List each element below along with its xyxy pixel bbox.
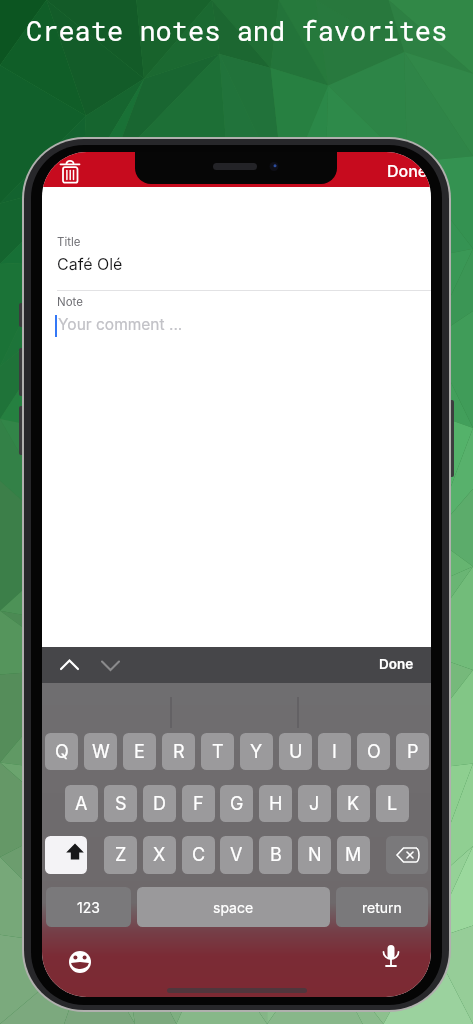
staticText: D (153, 793, 166, 815)
staticText: X (153, 844, 166, 866)
staticText: space (213, 899, 254, 916)
staticText: Y (250, 741, 263, 763)
button[interactable]: N (298, 836, 331, 874)
staticText: R (173, 741, 185, 763)
staticText: B (270, 844, 282, 866)
staticText: M (345, 844, 362, 866)
button[interactable]: G (220, 785, 253, 822)
staticText: O (367, 741, 381, 763)
staticText: W (92, 741, 110, 763)
button[interactable] (45, 836, 87, 874)
button[interactable]: S (104, 785, 137, 822)
button[interactable]: Done (387, 161, 428, 180)
staticText: J (309, 793, 320, 815)
button[interactable]: F (182, 785, 215, 822)
staticText: S (115, 793, 127, 815)
staticText: H (269, 793, 283, 815)
staticText: E (134, 741, 145, 763)
button[interactable]: Your comment ... (58, 315, 183, 334)
button[interactable]: C (182, 836, 215, 874)
button[interactable]: B (259, 836, 292, 874)
staticText: A (75, 793, 88, 815)
staticText: T (212, 741, 224, 763)
button[interactable]: V (220, 836, 253, 874)
button[interactable]: I (318, 733, 351, 770)
button[interactable]: M (337, 836, 370, 874)
staticText: V (230, 844, 243, 866)
button[interactable]: R (162, 733, 195, 770)
staticText: Title (57, 235, 81, 249)
button[interactable]: D (143, 785, 176, 822)
staticText: P (407, 741, 419, 763)
button[interactable]: return (336, 887, 428, 927)
button[interactable]: A (65, 785, 98, 822)
staticText: U (289, 741, 303, 763)
button[interactable]: K (337, 785, 370, 822)
button[interactable]: U (279, 733, 312, 770)
button[interactable]: Café Olé (57, 254, 123, 273)
button[interactable]: X (143, 836, 176, 874)
button[interactable]: Z (104, 836, 137, 874)
staticText: K (347, 793, 360, 815)
button[interactable]: J (298, 785, 331, 822)
staticText: C (192, 844, 206, 866)
button[interactable] (386, 836, 428, 874)
button[interactable]: Q (45, 733, 78, 770)
button[interactable]: H (259, 785, 292, 822)
staticText: G (230, 793, 244, 815)
button[interactable]: space (137, 887, 330, 927)
staticText: Create notes and favorites (26, 13, 448, 49)
staticText: Q (55, 741, 69, 763)
button[interactable]: E (123, 733, 156, 770)
staticText: I (332, 741, 337, 763)
button[interactable]: P (396, 733, 429, 770)
button[interactable]: Done (379, 656, 414, 672)
staticText: N (308, 844, 322, 866)
button[interactable]: Y (240, 733, 273, 770)
staticText: return (362, 899, 402, 916)
staticText: Z (115, 844, 127, 866)
button[interactable]: T (201, 733, 234, 770)
staticText: L (387, 793, 398, 815)
button[interactable]: 123 (46, 887, 131, 927)
staticText: 123 (77, 899, 100, 916)
button[interactable] (56, 157, 84, 185)
button[interactable]: W (84, 733, 117, 770)
button[interactable]: L (376, 785, 409, 822)
staticText: F (193, 793, 204, 815)
button[interactable]: O (357, 733, 390, 770)
staticText: Note (57, 295, 83, 309)
